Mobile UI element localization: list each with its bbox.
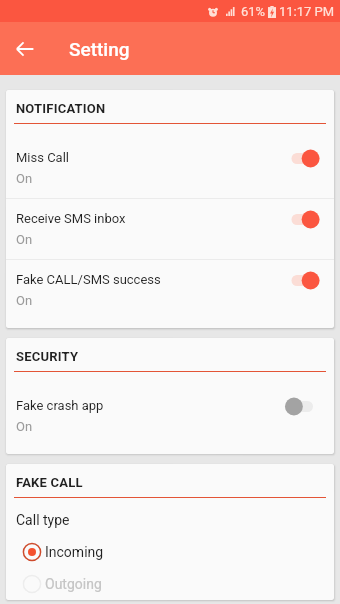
staticText: Call type (16, 512, 70, 528)
staticText: NOTIFICATION (16, 101, 106, 116)
button[interactable]: Back (5, 29, 45, 69)
staticText: Incoming (45, 544, 104, 560)
staticText: On (16, 232, 33, 247)
staticText: Fake CALL/SMS success (16, 272, 161, 287)
staticText: On (16, 419, 33, 434)
staticText: Fake crash app (16, 398, 104, 413)
button[interactable]: Receive SMS inbox (6, 199, 334, 260)
button[interactable]: Fake CALL/SMS success (6, 260, 334, 328)
staticText: Receive SMS inbox (16, 211, 126, 226)
staticText: FAKE CALL (16, 475, 83, 490)
staticText: Outgoing (45, 576, 102, 592)
button[interactable]: Outgoing (6, 568, 334, 600)
staticText: 11:17 PM (279, 4, 335, 19)
button[interactable]: Fake crash app (6, 386, 334, 454)
staticText: 61% (241, 4, 266, 19)
button[interactable]: Incoming (6, 536, 334, 568)
staticText: On (16, 293, 33, 308)
button[interactable]: Miss Call (6, 138, 334, 199)
staticText: Miss Call (16, 150, 70, 165)
staticText: On (16, 171, 33, 186)
staticText: Setting (69, 38, 130, 60)
staticText: SECURITY (16, 349, 79, 364)
